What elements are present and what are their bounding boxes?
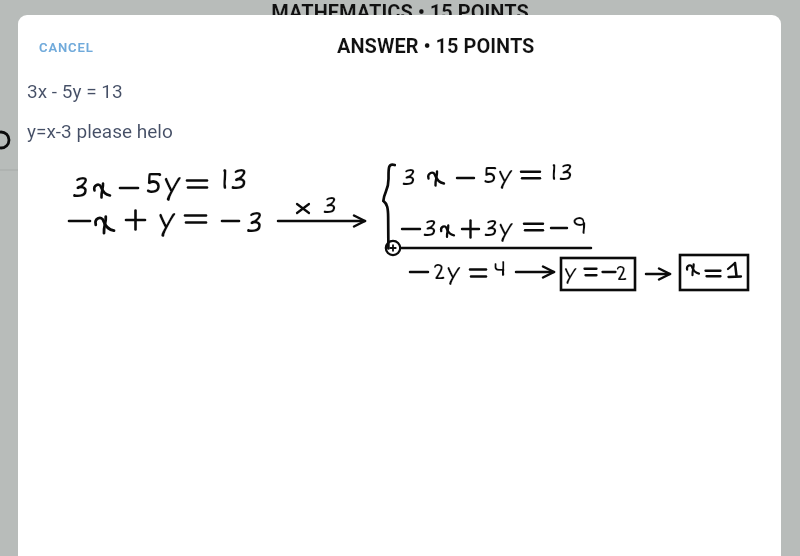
staticText: 3y: [483, 214, 513, 244]
button[interactable]: CANCEL: [29, 33, 104, 62]
staticText: 2: [615, 260, 629, 286]
staticText: y: [158, 202, 176, 238]
staticText: 9: [572, 211, 588, 241]
staticText: 3: [422, 214, 438, 244]
staticText: 2y: [432, 258, 461, 286]
staticText: 13: [220, 162, 249, 198]
staticText: 3: [245, 205, 264, 241]
staticText: 3: [322, 191, 338, 221]
staticText: MATHEMATICS • 15 POINTS: [0, 0, 800, 23]
staticText: 13: [550, 158, 574, 188]
staticText: 3x - 5y = 13: [27, 80, 123, 102]
staticText: 3: [401, 163, 417, 193]
staticText: y: [564, 259, 577, 285]
staticText: y=x-3 please helo: [27, 120, 173, 142]
staticText: 5y: [144, 166, 181, 202]
staticText: 4: [493, 255, 507, 283]
staticText: 5y: [482, 161, 513, 191]
staticText: ANSWER • 15 POINTS: [337, 34, 535, 57]
staticText: 3: [71, 170, 90, 206]
staticText: CANCEL: [39, 40, 94, 55]
